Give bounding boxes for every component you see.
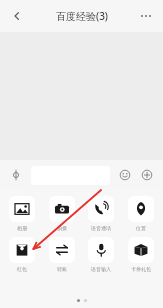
button[interactable]: 拍摄 xyxy=(44,196,80,231)
staticText: 语音通话 xyxy=(91,225,111,231)
staticText: 卡券礼包 xyxy=(131,266,151,272)
staticText: 相册 xyxy=(17,225,27,231)
button[interactable]: Voice message xyxy=(5,164,27,186)
staticText: 语音输入 xyxy=(91,266,111,272)
button[interactable]: 红包 xyxy=(4,237,40,272)
button[interactable]: 卡券礼包 xyxy=(123,237,159,272)
button[interactable]: 转账 xyxy=(44,237,80,272)
button[interactable]: More functions xyxy=(136,164,158,186)
button[interactable]: Back xyxy=(6,5,28,27)
staticText: 转账 xyxy=(57,266,67,272)
button[interactable]: 语音通话 xyxy=(83,196,119,231)
staticText: 百度经验(3) xyxy=(56,9,108,23)
button[interactable]: 相册 xyxy=(4,196,40,231)
button[interactable]: More options xyxy=(135,5,157,27)
button[interactable]: 语音输入 xyxy=(83,237,119,272)
staticText: 拍摄 xyxy=(57,225,67,231)
button[interactable]: 位置 xyxy=(123,196,159,231)
button[interactable]: Emoji xyxy=(114,164,136,186)
staticText: 红包 xyxy=(17,266,27,272)
staticText: 位置 xyxy=(136,225,146,231)
